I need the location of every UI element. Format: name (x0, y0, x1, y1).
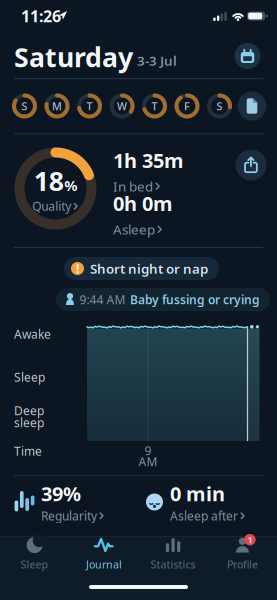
button[interactable]: Asleep after 0 minutes (146, 480, 266, 524)
staticText: 39% (41, 480, 81, 507)
staticText: 18 (34, 163, 64, 198)
staticText: Short night or nap (90, 260, 208, 277)
staticText: 9 (144, 442, 151, 458)
button[interactable]: Journal (72, 537, 136, 571)
button[interactable]: Sunday (12, 93, 37, 118)
staticText: 1 (247, 533, 252, 546)
staticText: Sleep (14, 369, 45, 385)
button[interactable]: Short night or nap (64, 257, 219, 280)
staticText: Awake (14, 326, 51, 342)
staticText: S (21, 99, 27, 113)
button[interactable]: In bed 1 hour 35 minutes (113, 147, 233, 195)
button[interactable]: Calendar (234, 43, 260, 69)
staticText: S (216, 99, 222, 113)
staticText: Deep (14, 402, 44, 418)
button[interactable]: Asleep 0 hours 0 minutes (113, 190, 233, 238)
staticText: 3-3 Jul (137, 52, 177, 69)
staticText: Baby fussing or crying (130, 291, 260, 307)
button[interactable]: Tuesday (77, 93, 102, 118)
staticText: 0 min (170, 480, 225, 507)
staticText: ! (76, 260, 79, 276)
staticText: F (184, 99, 190, 113)
staticText: 11:26 (21, 5, 61, 27)
staticText: sleep (14, 414, 44, 430)
staticText: Statistics (151, 557, 196, 571)
button[interactable]: Sleep (3, 537, 67, 571)
staticText: T (86, 99, 92, 113)
staticText: Regularity (41, 508, 97, 524)
button[interactable]: Wednesday (109, 93, 134, 118)
button[interactable]: Sleep quality 18 percent (14, 147, 96, 229)
staticText: Asleep (113, 220, 155, 238)
staticText: % (64, 175, 77, 195)
button[interactable]: Saturday (207, 93, 232, 118)
staticText: 1h 35m (113, 147, 184, 173)
staticText: 9:44 AM (79, 291, 125, 307)
staticText: Time (14, 443, 42, 459)
staticText: In bed (113, 177, 153, 195)
staticText: Saturday (14, 39, 133, 75)
button[interactable]: Sleep notes (237, 91, 266, 120)
button[interactable]: Monday (44, 93, 69, 118)
staticText: Asleep after (170, 508, 238, 524)
button[interactable]: Baby fussing or crying at 9:44 AM (56, 288, 270, 311)
button[interactable]: Profile (210, 537, 274, 571)
button[interactable]: Friday (174, 93, 199, 118)
staticText: Profile (227, 557, 258, 571)
button[interactable]: Statistics (141, 537, 205, 571)
staticText: AM (138, 453, 157, 469)
button[interactable]: Share (235, 149, 266, 180)
staticText: Sleep (21, 557, 49, 571)
staticText: Journal (86, 557, 122, 571)
staticText: Quality (32, 198, 71, 214)
button[interactable]: Thursday (142, 93, 167, 118)
staticText: W (117, 99, 127, 113)
button[interactable]: Regularity 39 percent (14, 480, 134, 524)
staticText: T (151, 99, 157, 113)
staticText: 0h 0m (113, 190, 173, 216)
staticText: M (52, 99, 62, 113)
